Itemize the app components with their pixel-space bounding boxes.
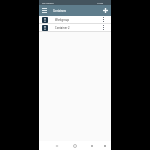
- staticText: Kg System: [42, 1, 54, 4]
- button[interactable]: More options: [101, 24, 106, 31]
- button[interactable]: Back: [53, 141, 61, 150]
- button[interactable]: More options: [101, 16, 106, 23]
- staticText: Containers: [53, 9, 67, 12]
- button[interactable]: Home: [71, 141, 79, 150]
- button[interactable]: Menu: [101, 141, 109, 150]
- button[interactable]: Workgroup: [39, 16, 111, 24]
- button[interactable]: Container 2: [39, 24, 111, 32]
- button[interactable]: Add container: [101, 5, 110, 16]
- staticText: Container 2: [55, 26, 101, 30]
- button[interactable]: Recent apps: [88, 141, 96, 150]
- staticText: 12:00: [97, 1, 104, 4]
- button[interactable]: Open navigation drawer: [39, 5, 49, 16]
- staticText: Workgroup: [55, 18, 101, 22]
